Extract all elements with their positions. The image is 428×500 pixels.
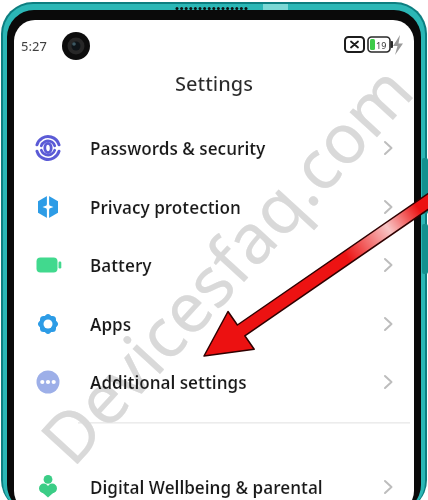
button[interactable]: Apps <box>14 295 414 353</box>
staticText: Apps <box>90 313 132 336</box>
staticText: Privacy protection <box>90 196 241 219</box>
button[interactable]: Digital Wellbeing & parental <box>14 458 414 500</box>
button[interactable]: Privacy protection <box>14 178 414 236</box>
staticText: 19 <box>376 39 387 51</box>
button[interactable]: Additional settings <box>14 353 414 411</box>
staticText: Passwords & security <box>90 137 266 160</box>
button[interactable]: Battery <box>14 236 414 294</box>
staticText: Digital Wellbeing & parental <box>90 476 323 499</box>
button[interactable]: Passwords & security <box>14 119 414 177</box>
staticText: Additional settings <box>90 371 247 394</box>
staticText: Settings <box>175 70 253 96</box>
staticText: 5:27 <box>21 37 47 55</box>
staticText: Battery <box>90 254 152 277</box>
